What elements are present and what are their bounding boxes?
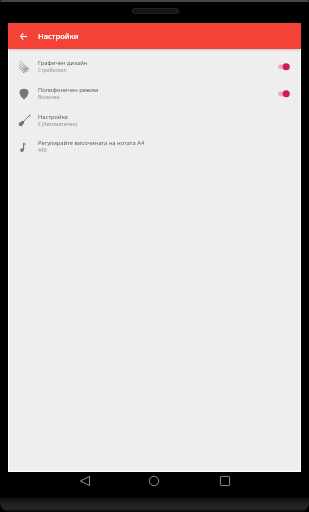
button[interactable]: Регулирайте височината на нотата A4 — [8, 133, 301, 160]
staticText: Настройки — [38, 31, 79, 41]
button[interactable]: Настройка — [8, 107, 301, 134]
button[interactable]: Полифоничен режим — [8, 80, 301, 107]
staticText: Стробоскоп — [38, 67, 67, 74]
staticText: Графичен дизайн — [38, 59, 88, 67]
button[interactable]: Toggle — [266, 84, 292, 104]
button[interactable]: Home — [146, 473, 162, 489]
button[interactable]: Back — [77, 473, 93, 489]
staticText: Регулирайте височината на нотата A4 — [38, 139, 145, 147]
staticText: E (Автоматичен) — [38, 121, 78, 128]
button[interactable]: Toggle — [266, 57, 292, 77]
staticText: Включен — [38, 94, 60, 101]
staticText: 440 — [38, 147, 47, 154]
button[interactable]: Back — [12, 25, 34, 47]
staticText: Полифоничен режим — [38, 86, 99, 94]
button[interactable]: Recents — [217, 473, 233, 489]
staticText: Настройка — [38, 113, 68, 121]
button[interactable]: Графичен дизайн — [8, 53, 301, 80]
